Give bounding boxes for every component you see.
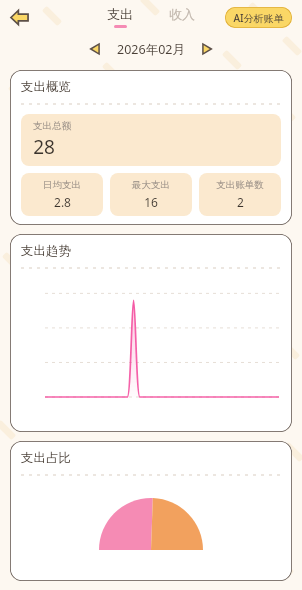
button[interactable]: Back (5, 3, 33, 31)
button[interactable]: 支出 (103, 4, 137, 30)
staticText: 支出概览 (21, 79, 71, 95)
staticText: 2 (237, 194, 244, 210)
staticText: 日均支出 (43, 179, 81, 191)
staticText: 支出账单数 (216, 179, 264, 191)
staticText: 支出 (107, 6, 133, 22)
staticText: 支出总额 (33, 120, 71, 132)
staticText: 支出趋势 (21, 243, 71, 259)
staticText: AI分析账单 (233, 11, 284, 25)
button[interactable]: 收入 (165, 4, 199, 30)
staticText: 16 (144, 194, 158, 210)
staticText: 收入 (169, 6, 195, 22)
staticText: 支出占比 (21, 450, 71, 466)
staticText: 28 (33, 134, 55, 160)
button[interactable]: AI分析账单 (225, 7, 292, 28)
staticText: 最大支出 (132, 179, 170, 191)
staticText: 2.8 (54, 194, 71, 210)
staticText: 2026年02月 (117, 41, 185, 58)
button[interactable]: Next month (195, 37, 219, 61)
button[interactable]: Previous month (83, 37, 107, 61)
